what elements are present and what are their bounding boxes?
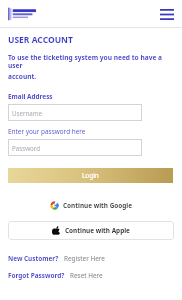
staticText: Username <box>12 109 43 117</box>
staticText: To use the ticketing system you need to … <box>8 53 174 70</box>
staticText: Register Here <box>64 254 105 263</box>
staticText: Email Address <box>8 92 53 101</box>
staticText: Login <box>82 171 99 180</box>
staticText: Continue with Google <box>63 201 133 210</box>
staticText: Forgot Password? <box>8 271 65 280</box>
staticText: Reset Here <box>70 271 103 280</box>
button[interactable]: New Customer? <box>8 254 174 263</box>
staticText: Password <box>12 144 40 152</box>
staticText: Continue with Apple <box>65 226 130 235</box>
staticText: New Customer? <box>8 254 59 263</box>
staticText: account. <box>8 72 37 81</box>
button[interactable]: Username <box>8 104 142 121</box>
button[interactable]: Home logo <box>8 7 38 21</box>
button[interactable]: Continue with Google <box>8 197 174 213</box>
button[interactable]: Open menu <box>159 6 175 22</box>
staticText: USER ACCOUNT <box>8 34 73 46</box>
staticText: Enter your password here <box>8 127 86 136</box>
button[interactable]: Continue with Apple <box>8 221 174 240</box>
button[interactable]: Login <box>8 168 173 183</box>
button[interactable]: Forgot Password? <box>8 271 174 280</box>
button[interactable]: Password <box>8 139 142 156</box>
